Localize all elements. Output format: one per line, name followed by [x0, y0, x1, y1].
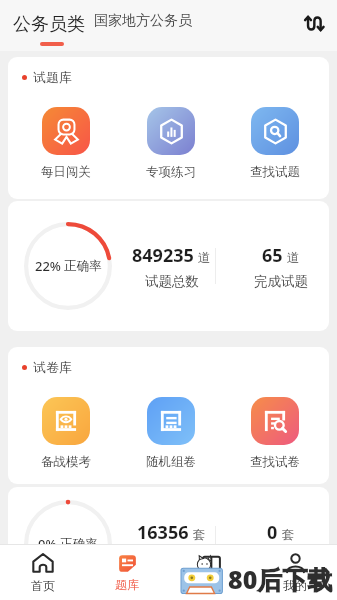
staticText: 65	[262, 243, 283, 268]
button[interactable]: 我的	[253, 545, 337, 600]
staticText: 查找试题	[250, 164, 300, 180]
button[interactable]: 国家地方公务员	[94, 12, 192, 35]
staticText: 22%	[35, 257, 61, 275]
button[interactable]: 首页	[0, 545, 85, 600]
staticText: 国家地方公务员	[94, 12, 192, 30]
button[interactable]: Switch exam category	[300, 10, 326, 36]
staticText: 学习	[199, 578, 223, 593]
staticText: 完成试卷	[254, 550, 308, 567]
staticText: 试卷总数	[145, 550, 199, 567]
button[interactable]: 查找试题	[235, 107, 315, 180]
staticText: 查找试卷	[250, 454, 300, 470]
staticText: 正确率	[64, 258, 102, 274]
button[interactable]: 专项练习	[131, 107, 211, 180]
staticText: 试题库	[33, 69, 72, 85]
staticText: 我的	[283, 578, 307, 593]
button[interactable]: 学习	[169, 545, 253, 600]
button[interactable]: 随机组卷	[131, 397, 211, 470]
staticText: 每日闯关	[41, 164, 91, 180]
button[interactable]: 查找试卷	[235, 397, 315, 470]
button[interactable]: 题库	[85, 545, 169, 600]
staticText: 16356	[137, 520, 189, 545]
staticText: 公务员类	[13, 13, 85, 36]
staticText: 正确率	[60, 536, 98, 552]
staticText: 套	[282, 527, 295, 543]
staticText: 0%	[38, 535, 57, 553]
staticText: 道	[287, 250, 300, 266]
staticText: 首页	[31, 578, 55, 593]
staticText: 专项练习	[146, 164, 196, 180]
staticText: 试题总数	[145, 273, 199, 290]
staticText: 备战模考	[41, 454, 91, 470]
staticText: 80后下载	[228, 562, 333, 596]
staticText: 0	[267, 520, 278, 545]
button[interactable]: 公务员类	[13, 0, 85, 46]
staticText: 完成试题	[254, 273, 308, 290]
button[interactable]: 备战模考	[26, 397, 106, 470]
button[interactable]: 每日闯关	[26, 107, 106, 180]
staticText: 849235	[132, 243, 194, 268]
staticText: 试卷库	[33, 359, 72, 375]
staticText: 道	[198, 250, 211, 266]
staticText: 题库	[115, 577, 139, 592]
staticText: 套	[193, 527, 206, 543]
staticText: 随机组卷	[146, 454, 196, 470]
